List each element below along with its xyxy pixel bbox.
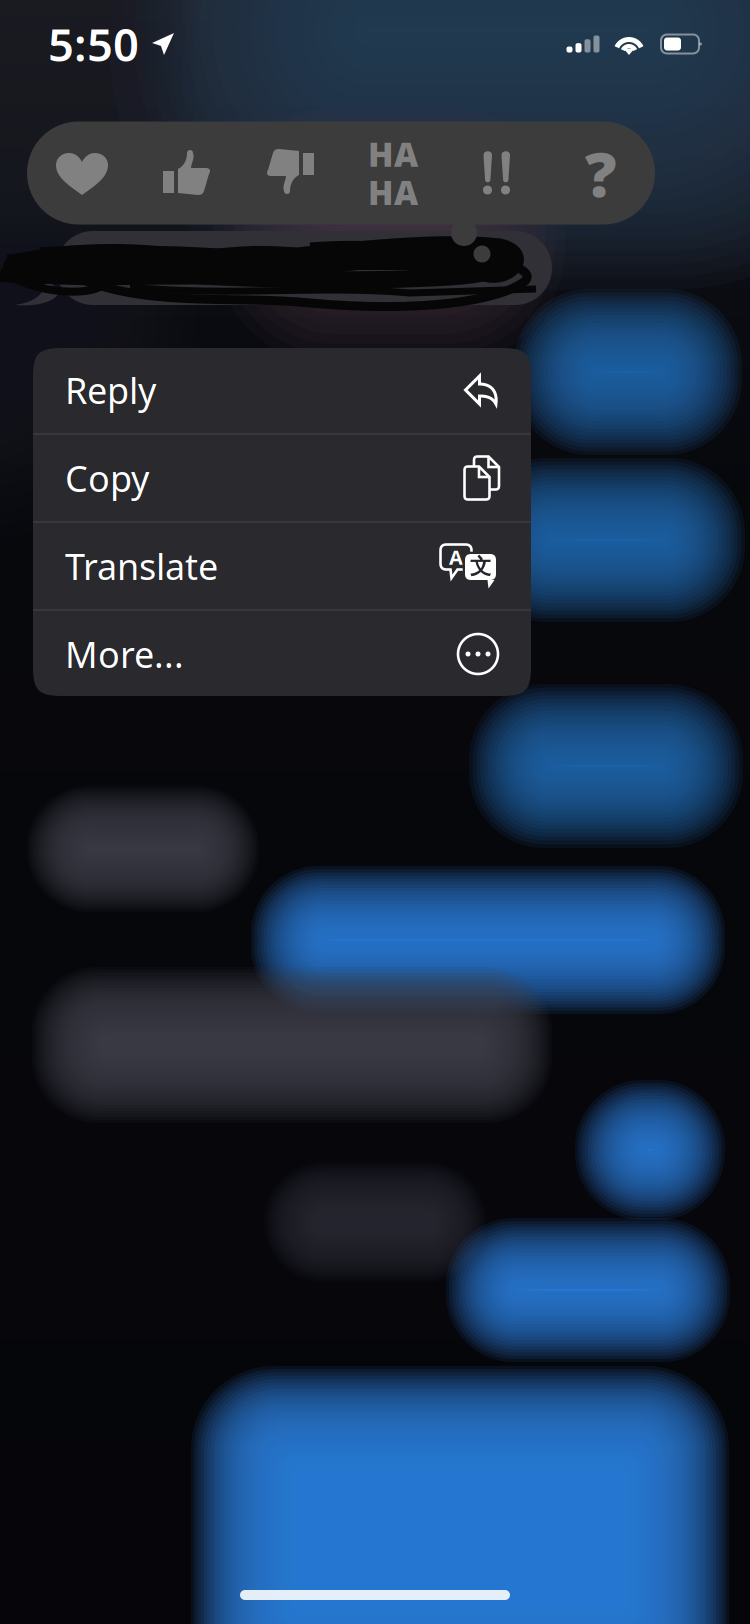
staticText: 5:50 — [48, 14, 139, 74]
button[interactable]: Exclamation — [480, 149, 514, 197]
button[interactable]: Copy — [33, 434, 531, 521]
button[interactable]: Reply — [33, 346, 531, 433]
staticText: Copy — [65, 454, 149, 502]
staticText: More... — [65, 630, 184, 678]
staticText: Reply — [65, 366, 156, 414]
staticText: HA — [368, 170, 418, 214]
button[interactable]: Thumbs down — [265, 149, 313, 197]
staticText: Translate — [65, 542, 218, 590]
button[interactable]: Translate — [33, 522, 531, 609]
staticText: 文 — [470, 553, 491, 580]
button[interactable]: Love — [56, 151, 106, 195]
button[interactable]: Haha — [365, 147, 421, 199]
button[interactable]: Thumbs up — [161, 149, 209, 197]
button[interactable]: Question — [581, 147, 621, 199]
button[interactable]: More... — [33, 610, 531, 697]
staticText: ? — [585, 131, 617, 215]
staticText: HA — [368, 132, 418, 176]
staticText: A — [449, 544, 463, 570]
